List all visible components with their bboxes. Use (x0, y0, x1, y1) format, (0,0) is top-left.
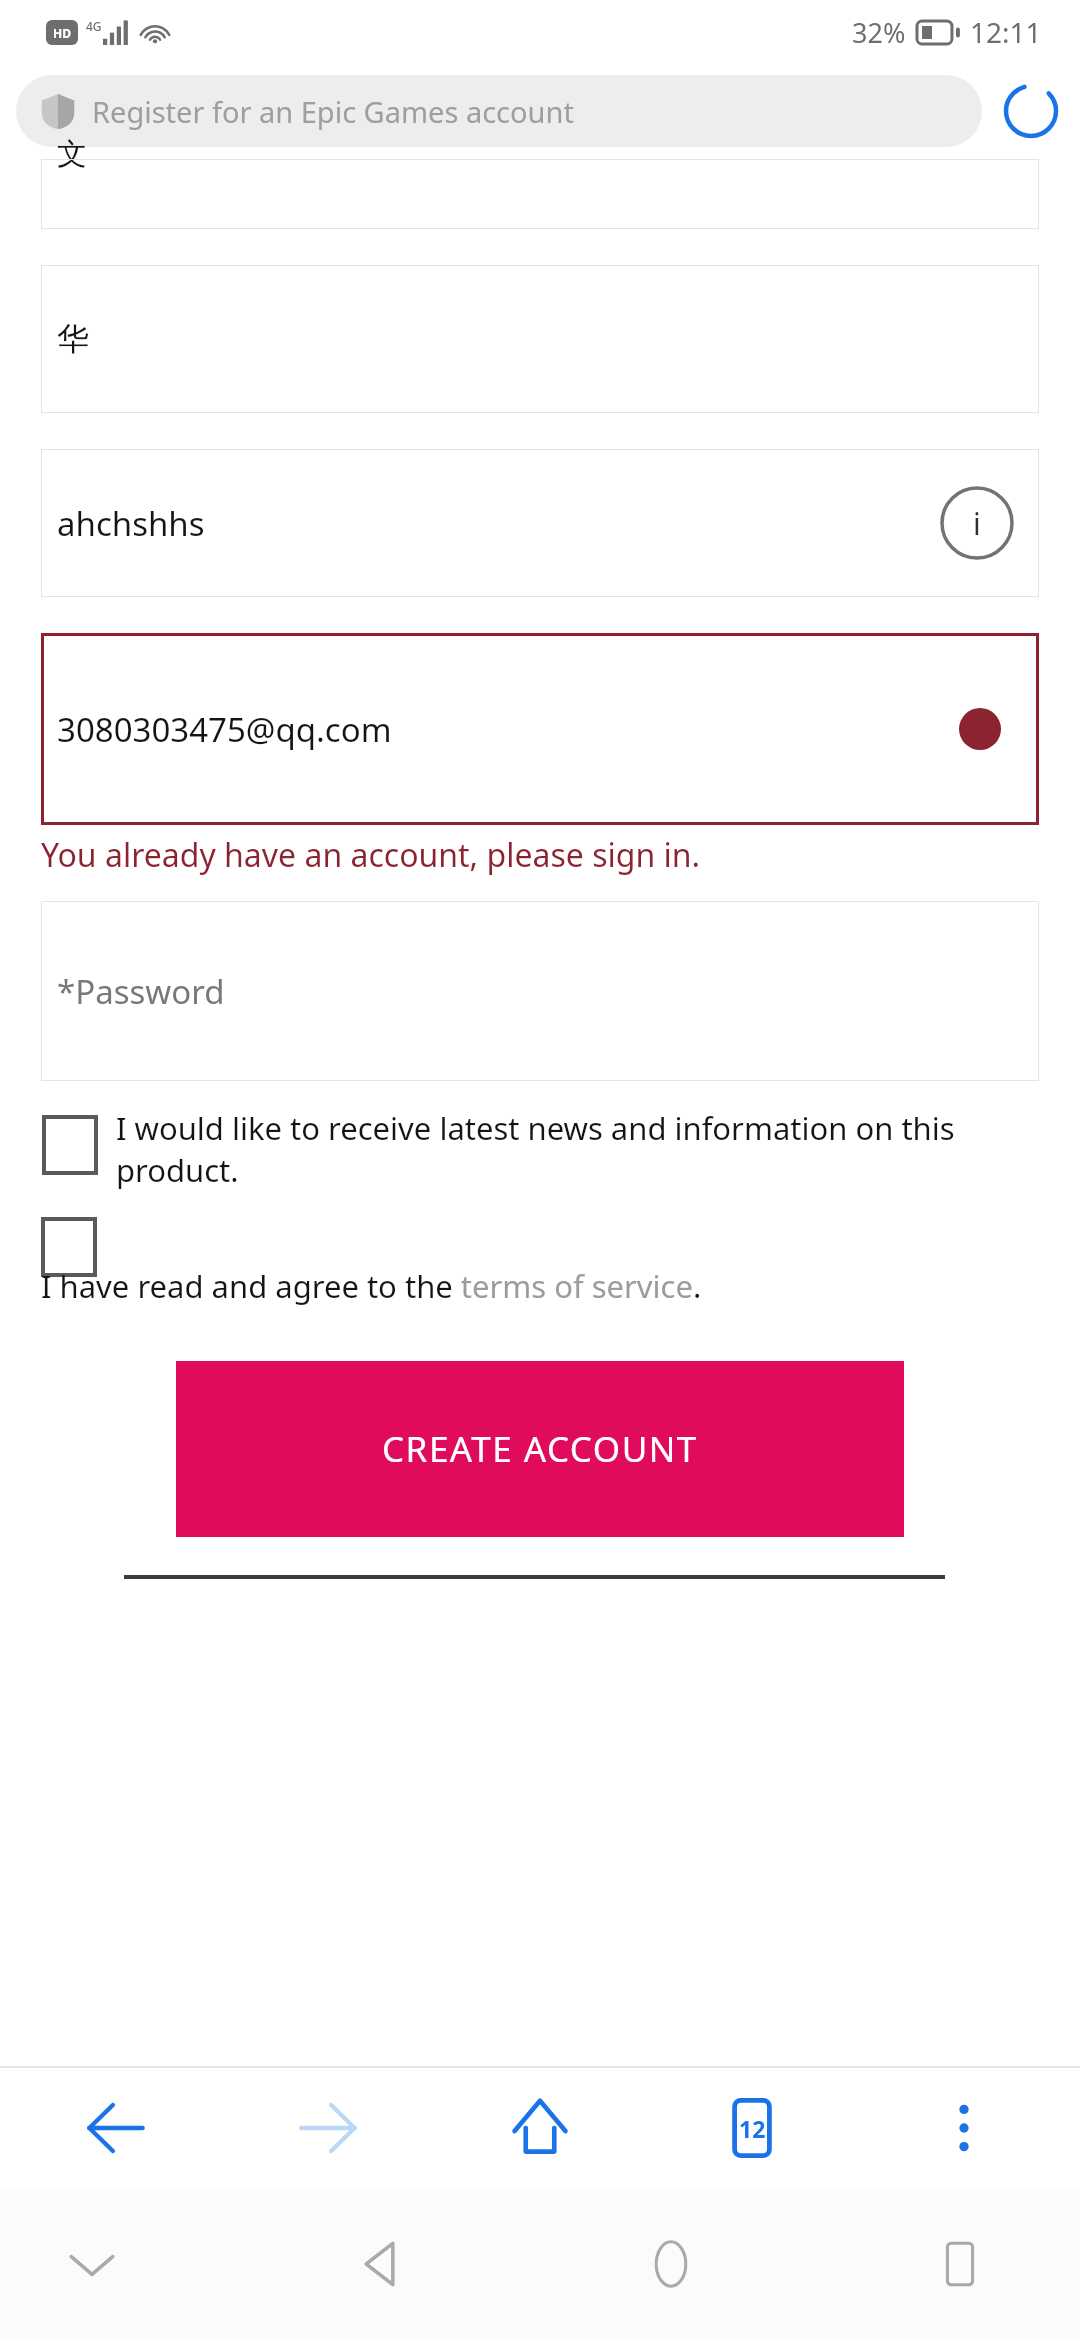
button[interactable]: ahchshhs (41, 449, 1039, 597)
staticText: HD (53, 25, 71, 41)
button[interactable]: 华 (41, 265, 1039, 413)
staticText: 3080303475@qq.com (57, 707, 392, 752)
button[interactable]: More information (937, 483, 1017, 563)
button[interactable]: Recent apps (898, 2202, 1022, 2326)
staticText: 华 (57, 319, 89, 359)
staticText: Register for an Epic Games account (92, 92, 574, 131)
button[interactable]: *Password (41, 901, 1039, 1081)
button[interactable]: Back (319, 2202, 443, 2326)
button[interactable]: 文 (41, 159, 1039, 229)
button[interactable]: Forward (270, 2070, 386, 2186)
staticText: 文 (57, 135, 87, 173)
staticText: i (973, 503, 981, 544)
button[interactable]: More options (906, 2070, 1022, 2186)
staticText: ahchshhs (57, 501, 205, 546)
staticText: 32% (852, 14, 906, 51)
button[interactable]: Stop loading (996, 76, 1066, 146)
staticText: 12 (739, 2113, 766, 2144)
staticText: CREATE ACCOUNT (382, 1425, 698, 1473)
staticText: 4G (86, 18, 102, 34)
button[interactable]: Tabs, 12 open (694, 2070, 810, 2186)
button[interactable]: I would like to receive latest news and … (41, 1115, 1039, 1199)
staticText: 12:11 (970, 13, 1042, 51)
button[interactable]: I have read and agree to the terms of se… (41, 1217, 1039, 1319)
staticText: I would like to receive latest news and … (116, 1107, 1039, 1191)
button[interactable]: Back (58, 2070, 174, 2186)
staticText: *Password (57, 969, 225, 1014)
staticText: I have read and agree to the terms of se… (41, 1265, 702, 1307)
button[interactable]: Register for an Epic Games account (16, 75, 982, 147)
button[interactable]: CREATE ACCOUNT (176, 1361, 904, 1537)
button[interactable]: Home (482, 2070, 598, 2186)
button[interactable]: 3080303475@qq.com (41, 633, 1039, 825)
button[interactable]: Hide keyboard (30, 2202, 154, 2326)
button[interactable]: Home (609, 2202, 733, 2326)
staticText: You already have an account, please sign… (41, 833, 1039, 877)
